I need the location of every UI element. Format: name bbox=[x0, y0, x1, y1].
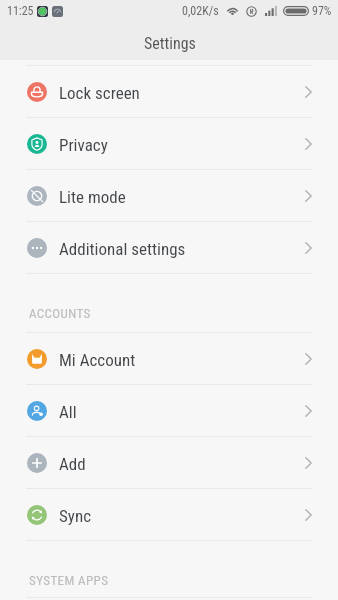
staticText: 0,02K/s bbox=[182, 4, 219, 18]
staticText: Privacy bbox=[59, 135, 108, 155]
staticText: 11:25 bbox=[7, 4, 34, 18]
staticText: All bbox=[59, 402, 77, 422]
staticText: Lock screen bbox=[59, 83, 140, 103]
button[interactable]: Mi Account bbox=[0, 333, 338, 384]
staticText: Additional settings bbox=[59, 239, 186, 259]
staticText: Mi Account bbox=[59, 350, 136, 370]
staticText: Settings bbox=[144, 34, 196, 53]
staticText: Sync bbox=[59, 506, 91, 526]
button[interactable]: Add bbox=[0, 437, 338, 488]
button[interactable]: All bbox=[0, 385, 338, 436]
button[interactable]: Privacy bbox=[0, 118, 338, 169]
button[interactable]: Lite mode bbox=[0, 170, 338, 221]
staticText: SYSTEM APPS bbox=[29, 573, 109, 588]
staticText: ACCOUNTS bbox=[29, 306, 91, 321]
button[interactable]: Additional settings bbox=[0, 222, 338, 273]
button[interactable]: Sync bbox=[0, 489, 338, 540]
staticText: Add bbox=[59, 454, 86, 474]
staticText: 97% bbox=[312, 4, 332, 18]
staticText: Lite mode bbox=[59, 187, 126, 207]
button[interactable]: Lock screen bbox=[0, 66, 338, 117]
